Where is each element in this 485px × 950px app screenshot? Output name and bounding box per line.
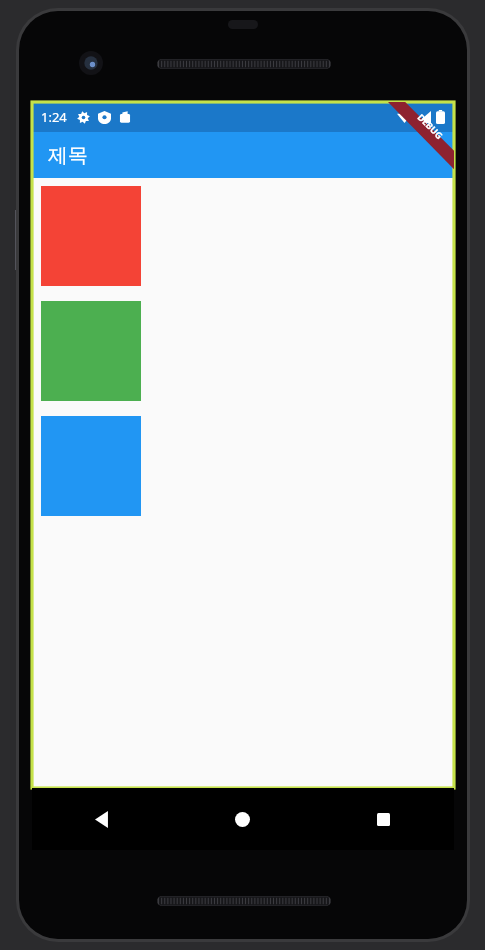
button[interactable]: Home (172, 788, 313, 850)
button[interactable]: Recent apps (313, 788, 454, 850)
button[interactable]: Back (32, 788, 172, 850)
staticText: 제목 (48, 143, 88, 168)
staticText: DEBUG (415, 111, 446, 141)
staticText: 1:24 (41, 108, 67, 126)
